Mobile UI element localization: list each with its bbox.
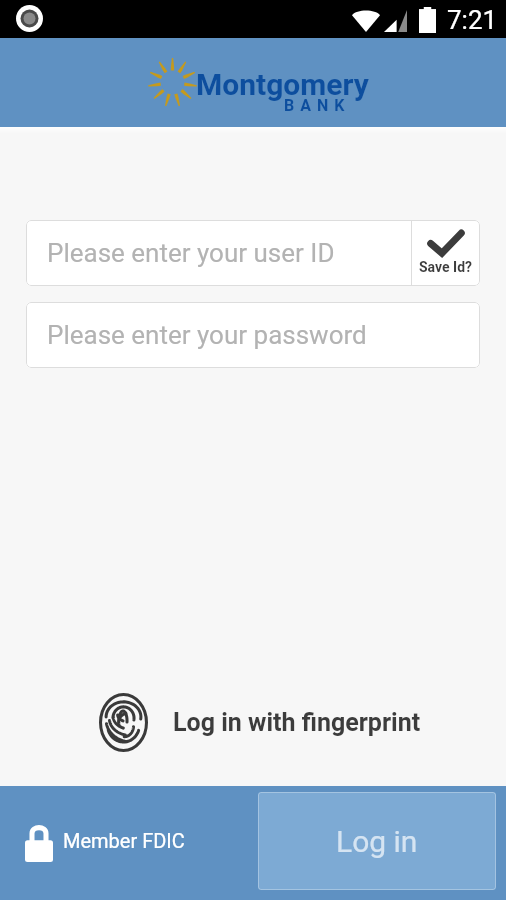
staticText: Log in with fingerprint	[173, 708, 421, 737]
button[interactable]: Please enter your password	[26, 302, 480, 368]
staticText: Member FDIC	[63, 829, 185, 852]
staticText: Save Id?	[419, 259, 473, 275]
staticText: Montgomery	[196, 67, 369, 102]
staticText: 7:21	[447, 5, 498, 35]
button[interactable]: Log in with fingerprint	[14, 689, 506, 755]
staticText: Please enter your user ID	[47, 238, 335, 268]
button[interactable]: Log in	[258, 792, 496, 890]
other: Member FDIC	[25, 824, 53, 862]
button[interactable]: Save Id?	[412, 220, 480, 286]
staticText: BANK	[284, 96, 351, 115]
staticText: Log in	[336, 824, 418, 859]
button[interactable]: Member FDIC	[25, 824, 185, 862]
button[interactable]: Please enter your user ID	[26, 220, 411, 286]
staticText: Please enter your password	[47, 320, 367, 350]
